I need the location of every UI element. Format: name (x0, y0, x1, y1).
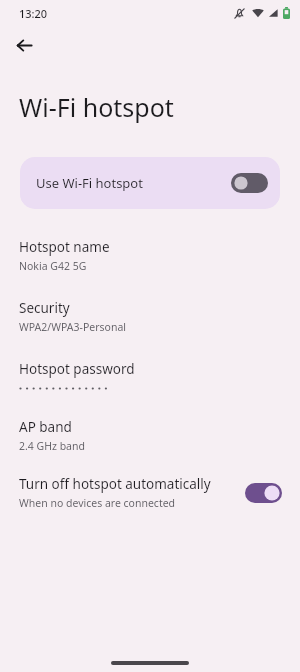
staticText: 13:20 (19, 6, 48, 21)
button[interactable]: Hotspot name (0, 238, 300, 273)
staticText: Turn off hotspot automatically (19, 475, 211, 493)
button[interactable]: Turn off hotspot automatically (0, 475, 300, 510)
button[interactable]: AP band (0, 418, 300, 453)
button[interactable]: Hotspot password (0, 360, 300, 393)
button[interactable]: Security (0, 299, 300, 334)
staticText: When no devices are connected (19, 496, 176, 510)
staticText: Wi-Fi hotspot (19, 90, 174, 124)
button[interactable]: Back (7, 28, 41, 62)
staticText: Hotspot name (19, 238, 110, 256)
staticText: Security (19, 299, 70, 317)
staticText: AP band (19, 418, 72, 436)
staticText: Use Wi-Fi hotspot (36, 174, 231, 192)
staticText: Hotspot password (19, 360, 135, 378)
button[interactable]: Use Wi-Fi hotspot (20, 157, 280, 209)
staticText: Nokia G42 5G (19, 259, 87, 273)
staticText: WPA2/WPA3-Personal (19, 320, 126, 334)
staticText: 2.4 GHz band (19, 439, 85, 453)
